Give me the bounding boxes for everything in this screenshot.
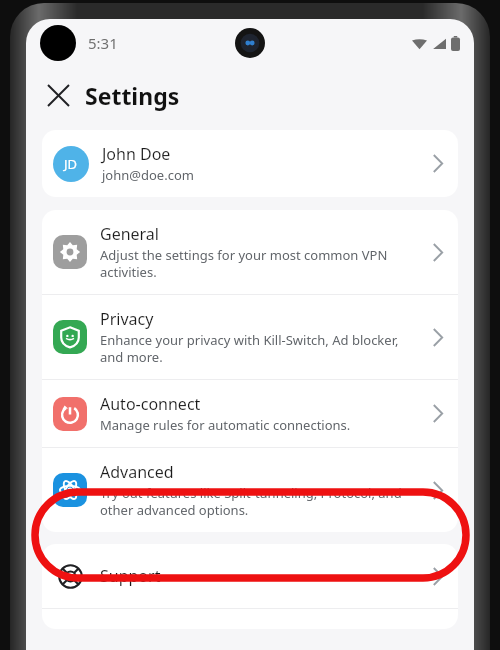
staticText: John Doe: [102, 143, 171, 165]
staticText: Privacy: [100, 308, 154, 330]
staticText: Advanced: [100, 461, 174, 483]
button[interactable]: Privacy: [42, 295, 458, 379]
staticText: JD: [64, 155, 78, 173]
staticText: Try out features like Split-tunneling, P…: [100, 484, 425, 519]
staticText: Enhance your privacy with Kill-Switch, A…: [100, 331, 425, 366]
button[interactable]: JD: [42, 130, 458, 197]
staticText: Support: [100, 565, 433, 587]
button[interactable]: General: [42, 210, 458, 294]
button[interactable]: Support: [42, 544, 458, 608]
staticText: Settings: [85, 80, 180, 111]
button[interactable]: Advanced: [42, 448, 458, 532]
staticText: Adjust the settings for your most common…: [100, 246, 425, 281]
staticText: 5:31: [88, 33, 118, 53]
staticText: Auto-connect: [100, 393, 201, 415]
staticText: General: [100, 223, 159, 245]
button[interactable]: Auto-connect: [42, 380, 458, 447]
staticText: john@doe.com: [102, 166, 194, 184]
button[interactable]: Close: [40, 77, 76, 113]
staticText: Manage rules for automatic connections.: [100, 416, 351, 434]
